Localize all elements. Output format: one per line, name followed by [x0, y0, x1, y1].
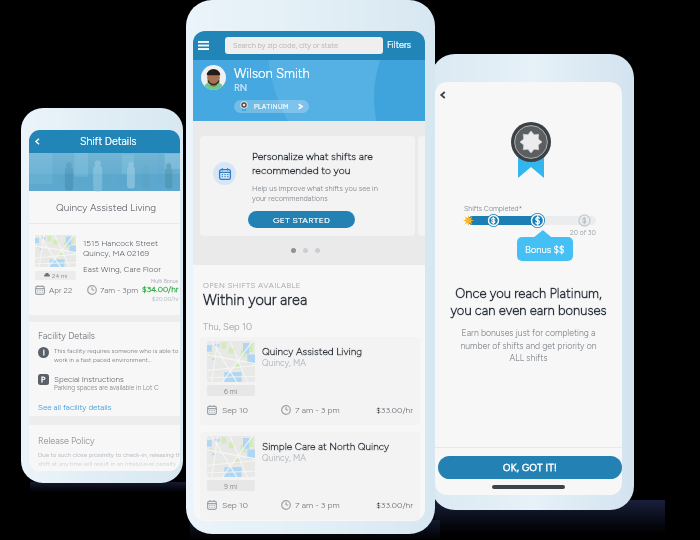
staticText: Shift Details: [80, 135, 137, 148]
staticText: East Wing, Care Floor: [83, 264, 161, 274]
staticText: 9 mi: [224, 482, 238, 490]
staticText: $20.00/hr: [152, 295, 179, 302]
staticText: Shifts Completed*: [464, 204, 523, 212]
staticText: Search by zip code, city or state: [233, 41, 338, 50]
staticText: RN: [234, 82, 248, 93]
staticText: This facility requires someone who is ab…: [54, 347, 179, 364]
staticText: Sep 10: [222, 500, 248, 510]
staticText: $: [491, 216, 496, 225]
staticText: Help us improve what shifts you see in y…: [252, 184, 378, 203]
staticText: $34.00/hr: [142, 284, 179, 294]
staticText: i: [43, 348, 45, 357]
button[interactable]: Menu: [194, 36, 212, 54]
staticText: 7 am - 3 pm: [295, 500, 340, 510]
staticText: Quincy, MA: [262, 358, 306, 368]
staticText: 1515 Hancock Street Quincy, MA 02169: [83, 238, 158, 258]
staticText: 7 am - 3 pm: [295, 405, 340, 415]
staticText: Apr 22: [49, 285, 73, 295]
staticText: $: [535, 215, 541, 226]
staticText: OK, GOT IT!: [503, 462, 558, 473]
staticText: Facility Details: [38, 330, 96, 341]
staticText: Quincy Assisted Living: [262, 345, 363, 357]
staticText: PLATINUM: [254, 103, 289, 111]
staticText: OPEN SHIFTS AVAILABLE: [203, 281, 301, 290]
staticText: Bonus $$: [525, 244, 565, 255]
staticText: 20 of 30: [570, 229, 596, 237]
button[interactable]: 9 mi: [200, 432, 420, 520]
staticText: Earn bonuses just for completing a numbe…: [443, 328, 614, 363]
staticText: See all facility details: [38, 402, 112, 412]
staticText: Once you reach Platinum, you can even ea…: [443, 286, 614, 319]
staticText: Within your area: [203, 291, 308, 308]
staticText: $33.00/hr: [376, 405, 414, 415]
staticText: Sep 10: [222, 405, 248, 415]
staticText: 24 mi: [52, 272, 68, 279]
button[interactable]: 6 mi: [200, 337, 420, 425]
staticText: Personalize what shifts are recommended …: [252, 150, 373, 176]
staticText: P: [41, 375, 46, 384]
button[interactable]: GET STARTED: [248, 211, 355, 228]
staticText: Quincy, MA: [262, 453, 306, 463]
button[interactable]: Back: [435, 86, 452, 104]
staticText: Parking spaces are available in Lot C: [54, 384, 159, 392]
staticText: 6 mi: [224, 387, 238, 395]
staticText: $: [582, 216, 587, 225]
staticText: Multi Bonus: [151, 278, 179, 284]
staticText: Filters: [387, 39, 412, 50]
staticText: Release Policy: [38, 435, 95, 446]
button[interactable]: PLATINUM: [234, 100, 309, 113]
staticText: GET STARTED: [273, 215, 331, 225]
staticText: Due to such close proximity to check-in,…: [38, 451, 180, 468]
button[interactable]: OK, GOT IT!: [438, 456, 622, 479]
staticText: Quincy Assisted Living: [56, 201, 157, 213]
staticText: $33.00/hr: [376, 500, 414, 510]
staticText: Special Instructions: [54, 374, 124, 384]
button[interactable]: Search by zip code, city or state: [225, 37, 383, 54]
button[interactable]: Filters: [387, 39, 412, 50]
staticText: Simple Care at North Quincy: [262, 440, 390, 452]
staticText: Thu, Sep 10: [203, 321, 252, 332]
staticText: Wilson Smith: [234, 66, 310, 82]
button[interactable]: Personalize what shifts are recommended …: [200, 136, 415, 236]
button[interactable]: Back: [30, 134, 45, 149]
button[interactable]: See all facility details: [38, 402, 112, 412]
staticText: 7am - 3pm: [100, 285, 139, 295]
